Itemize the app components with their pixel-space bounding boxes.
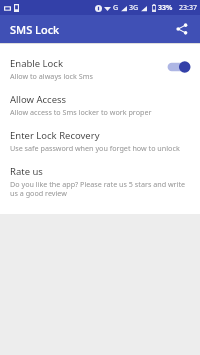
button[interactable]: Enter Lock Recovery <box>0 125 200 161</box>
staticText: Allow to always lock Sms <box>10 71 93 81</box>
button[interactable]: Share <box>170 17 194 41</box>
button[interactable]: Enable Lock <box>0 53 200 89</box>
staticText: Enable Lock <box>10 57 63 70</box>
staticText: Enter Lock Recovery <box>10 129 100 142</box>
staticText: 3G <box>129 3 139 13</box>
staticText: G <box>113 3 119 13</box>
staticText: Allow access to Sms locker to work prope… <box>10 107 152 117</box>
button[interactable] <box>166 59 192 75</box>
staticText: Allow Access <box>10 93 67 106</box>
staticText: 33% <box>158 3 173 13</box>
staticText: Rate us <box>10 165 43 178</box>
staticText: 23:37 <box>179 3 197 13</box>
button[interactable]: Allow Access <box>0 89 200 125</box>
staticText: Use safe password when you forget how to… <box>10 143 180 153</box>
staticText: Do you like the app? Please rate us 5 st… <box>10 179 190 199</box>
button[interactable]: Rate us <box>0 161 200 207</box>
staticText: SMS Lock <box>10 22 60 37</box>
